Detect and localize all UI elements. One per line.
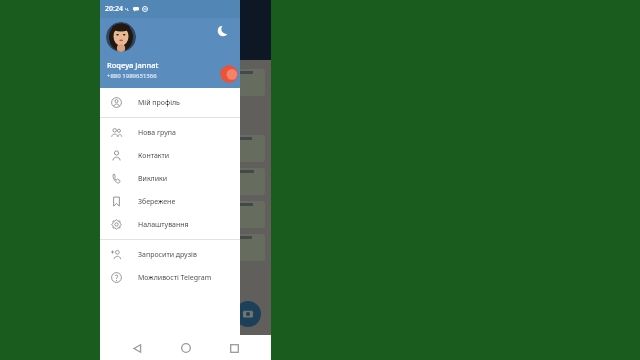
staticText: ч. [125,6,130,13]
button[interactable]: Recent apps [223,337,245,359]
button[interactable]: Back [126,337,148,359]
button[interactable]: Виклики [100,167,240,190]
staticText: Збережене [138,197,176,207]
button[interactable]: Toggle night mode [214,22,232,40]
button[interactable]: Мій профіль [100,91,240,114]
staticText: Контакти [138,151,170,161]
staticText: Запросити друзів [138,250,197,260]
button[interactable]: Можливості Telegram [100,266,240,289]
button[interactable]: Нова група [100,121,240,144]
button[interactable]: Home [175,337,197,359]
staticText: Налаштування [138,220,189,230]
staticText: Виклики [138,174,168,184]
button[interactable]: Profile photo [106,22,136,52]
button[interactable]: New message [235,301,261,327]
button[interactable]: Контакти [100,144,240,167]
staticText: 20:24 [105,4,123,14]
button[interactable]: Налаштування [100,213,240,236]
button[interactable]: 20:24 [100,0,240,88]
button[interactable]: Збережене [100,190,240,213]
staticText: Roqeya Jannat [107,60,159,70]
staticText: Мій профіль [138,98,180,108]
button[interactable]: Запросити друзів [100,243,240,266]
staticText: Можливості Telegram [138,273,212,283]
button[interactable]: Account badge [220,65,238,83]
staticText: Нова група [138,128,176,138]
staticText: +880 1989651366 [107,72,157,80]
